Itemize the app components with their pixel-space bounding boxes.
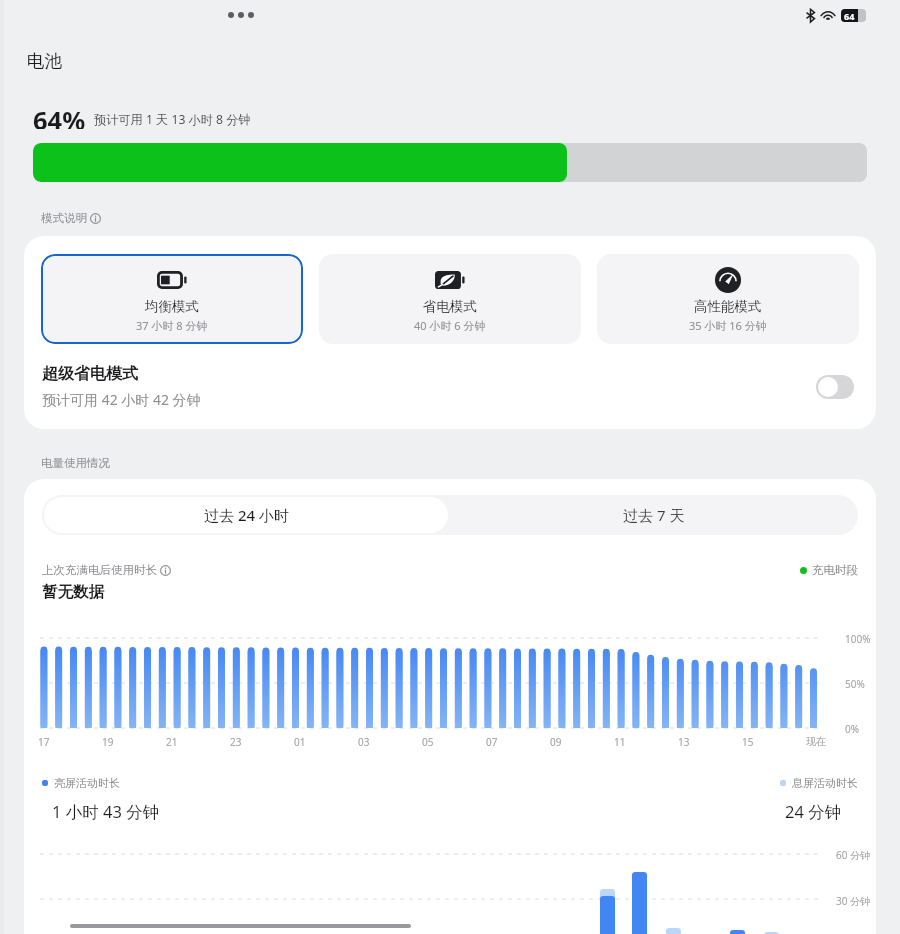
staticText: 03: [358, 735, 370, 749]
staticText: 过去 7 天: [623, 505, 685, 525]
staticText: 60 分钟: [836, 848, 871, 862]
staticText: 17: [38, 735, 50, 749]
staticText: 超级省电模式: [42, 364, 138, 384]
staticText: 息屏活动时长: [792, 776, 858, 790]
staticText: 30 分钟: [836, 894, 871, 908]
button[interactable]: 均衡模式: [41, 254, 303, 344]
staticText: 64: [844, 10, 855, 22]
staticText: 均衡模式: [145, 298, 199, 315]
staticText: 07: [486, 735, 498, 749]
staticText: 11: [614, 735, 626, 749]
staticText: 过去 24 小时: [204, 505, 289, 525]
staticText: 1 小时 43 分钟: [52, 800, 160, 823]
button[interactable]: 过去 7 天: [450, 495, 858, 535]
staticText: 13: [678, 735, 690, 749]
staticText: 预计可用 42 小时 42 分钟: [42, 390, 201, 409]
staticText: 09: [550, 735, 562, 749]
staticText: 40 小时 6 分钟: [414, 318, 486, 333]
staticText: 37 小时 8 分钟: [136, 318, 208, 333]
staticText: 19: [102, 735, 114, 749]
staticText: 64%: [33, 103, 86, 129]
staticText: 23: [230, 735, 242, 749]
staticText: 上次充满电后使用时长: [42, 563, 157, 577]
button[interactable]: 过去 24 小时: [44, 497, 448, 533]
staticText: 亮屏活动时长: [54, 776, 120, 790]
staticText: 21: [166, 735, 178, 749]
staticText: 35 小时 16 分钟: [689, 318, 767, 333]
staticText: 模式说明: [41, 211, 87, 225]
button[interactable]: 高性能模式: [597, 254, 859, 344]
staticText: 24 分钟: [785, 800, 842, 823]
staticText: 电池: [27, 50, 62, 72]
staticText: 暂无数据: [42, 582, 104, 602]
button[interactable]: 省电模式: [319, 254, 581, 344]
staticText: 01: [294, 735, 306, 749]
staticText: 100%: [845, 632, 871, 646]
button[interactable]: 超级省电模式开关: [816, 375, 854, 399]
staticText: 预计可用 1 天 13 小时 8 分钟: [94, 111, 251, 128]
staticText: 0%: [845, 722, 860, 736]
staticText: 电量使用情况: [41, 456, 110, 470]
staticText: 05: [422, 735, 434, 749]
staticText: 高性能模式: [694, 298, 762, 315]
button[interactable]: 超级省电模式: [24, 344, 876, 429]
staticText: 15: [742, 735, 754, 749]
staticText: 现在: [806, 735, 826, 748]
staticText: 充电时段: [812, 563, 858, 577]
staticText: 省电模式: [423, 298, 477, 315]
staticText: 50%: [845, 677, 865, 691]
